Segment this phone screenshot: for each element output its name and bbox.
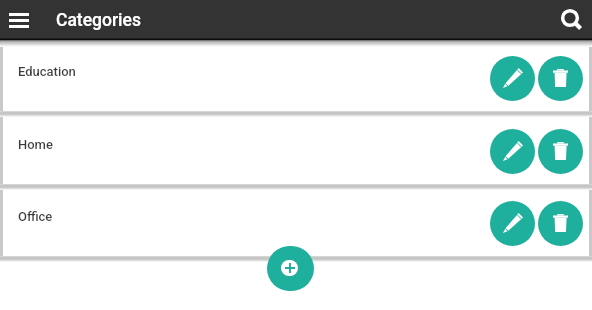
button[interactable]: Edit [490,56,535,101]
button[interactable]: Open navigation menu [2,3,36,37]
button[interactable]: Delete [538,56,583,101]
staticText: Education [18,64,76,79]
staticText: Office [18,209,53,224]
button[interactable]: Search [552,0,588,36]
staticText: Home [18,137,53,152]
button[interactable]: Education [3,44,589,112]
button[interactable]: Edit [490,201,535,246]
button[interactable]: Add category [267,246,314,291]
button[interactable]: Office [3,189,589,257]
button[interactable]: Delete [538,129,583,174]
button[interactable]: Delete [538,201,583,246]
button[interactable]: Home [3,117,589,185]
staticText: Categories [56,10,141,31]
button[interactable]: Edit [490,129,535,174]
